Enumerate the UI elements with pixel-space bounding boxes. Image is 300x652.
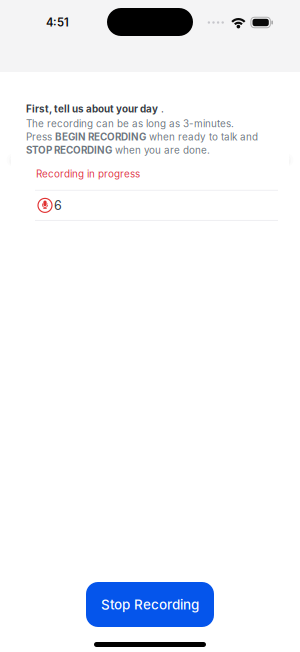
staticText: 6 <box>54 198 62 213</box>
staticText: The recording can be as long as 3-minute… <box>26 118 234 129</box>
staticText: 4:51 <box>46 16 69 29</box>
staticText: Recording in progress <box>36 168 140 180</box>
staticText: First, tell us about your day . <box>26 103 164 115</box>
staticText: STOP RECORDING when you are done. <box>26 144 210 156</box>
button[interactable]: Stop Recording <box>86 582 214 627</box>
staticText: Press BEGIN RECORDING when ready to talk… <box>26 131 258 143</box>
staticText: Stop Recording <box>101 596 199 613</box>
